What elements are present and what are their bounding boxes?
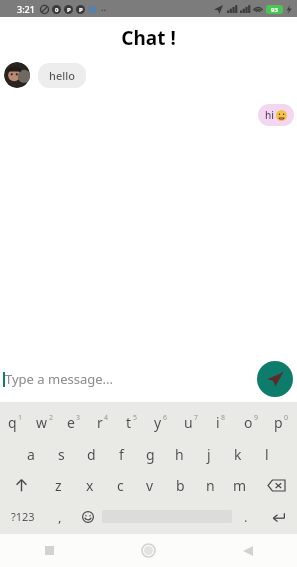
button[interactable]: Home (99, 534, 198, 567)
button[interactable]: Backspace (255, 470, 297, 501)
staticText: q (8, 413, 17, 432)
staticText: 6 (163, 413, 168, 423)
staticText: j (207, 445, 211, 464)
staticText: , (58, 508, 62, 526)
staticText: o (244, 413, 253, 432)
staticText: hello (49, 68, 75, 83)
staticText: 1 (18, 413, 23, 423)
button[interactable]: r (88, 406, 117, 438)
staticText: hi (265, 108, 274, 122)
staticText: 8 (221, 413, 226, 423)
staticText: 0 (284, 413, 289, 423)
staticText: i (216, 413, 220, 432)
staticText: e (67, 413, 75, 432)
staticText: u (184, 413, 193, 432)
button[interactable]: hi (258, 104, 294, 126)
button[interactable]: d (76, 438, 106, 470)
staticText: ?123 (11, 509, 35, 524)
staticText: 3 (76, 413, 81, 423)
staticText: k (234, 445, 242, 464)
staticText: x (86, 476, 94, 495)
staticText: Chat ! (0, 25, 297, 51)
staticText: b (176, 476, 185, 495)
staticText: 9 (254, 413, 259, 423)
staticText: d (87, 445, 96, 464)
staticText: m (233, 476, 247, 495)
button[interactable]: h (165, 438, 194, 470)
staticText: P (79, 6, 83, 14)
staticText: ·· (101, 3, 107, 15)
staticText: 3:21 (17, 3, 35, 15)
button[interactable]: Send (257, 361, 293, 397)
button[interactable]: g (136, 438, 165, 470)
button[interactable]: Shift (0, 470, 43, 501)
staticText: 7 (194, 413, 199, 423)
staticText: w (36, 413, 48, 432)
staticText: n (206, 476, 215, 495)
staticText: y (154, 413, 162, 432)
button[interactable]: b (165, 470, 195, 501)
button[interactable]: v (135, 470, 165, 501)
staticText: s (58, 445, 65, 464)
staticText: c (117, 476, 124, 495)
staticText: Type a message... (5, 370, 113, 388)
staticText: h (175, 445, 184, 464)
button[interactable]: , (46, 501, 74, 532)
button[interactable]: Recents (0, 534, 99, 567)
button[interactable]: k (223, 438, 252, 470)
button[interactable]: j (194, 438, 223, 470)
button[interactable]: f (106, 438, 136, 470)
staticText: 93 (271, 6, 278, 14)
button[interactable]: c (105, 470, 135, 501)
button[interactable]: t (117, 406, 146, 438)
staticText: a (27, 445, 35, 464)
staticText: r (97, 413, 103, 432)
button[interactable]: p (266, 406, 296, 438)
staticText: z (55, 476, 62, 495)
staticText: p (274, 413, 283, 432)
button[interactable]: Type a message... (3, 356, 257, 402)
staticText: l (265, 445, 269, 464)
button[interactable]: y (146, 406, 176, 438)
button[interactable]: o (236, 406, 266, 438)
staticText: P (67, 6, 71, 14)
button[interactable]: u (176, 406, 206, 438)
button[interactable]: l (252, 438, 281, 470)
staticText: 2 (49, 413, 54, 423)
staticText: 5 (133, 413, 138, 423)
button[interactable]: a (16, 438, 46, 470)
staticText: v (146, 476, 154, 495)
button[interactable]: m (225, 470, 255, 501)
button[interactable]: e (59, 406, 88, 438)
button[interactable]: w (30, 406, 59, 438)
staticText: 4 (104, 413, 109, 423)
button[interactable]: n (195, 470, 225, 501)
staticText: . (244, 508, 248, 526)
button[interactable]: x (74, 470, 105, 501)
staticText: g (146, 445, 155, 464)
button[interactable]: z (43, 470, 74, 501)
button[interactable]: . (232, 501, 260, 532)
button[interactable]: ?123 (0, 501, 46, 532)
button[interactable]: Emoji (74, 501, 102, 532)
button[interactable]: Back (198, 534, 297, 567)
button[interactable]: q (1, 406, 30, 438)
button[interactable]: hello (38, 63, 86, 88)
button[interactable]: Enter (260, 501, 297, 532)
staticText: t (126, 413, 132, 432)
staticText: 0 (55, 6, 59, 14)
button[interactable]: i (206, 406, 236, 438)
staticText: f (119, 445, 124, 464)
button[interactable]: s (46, 438, 76, 470)
